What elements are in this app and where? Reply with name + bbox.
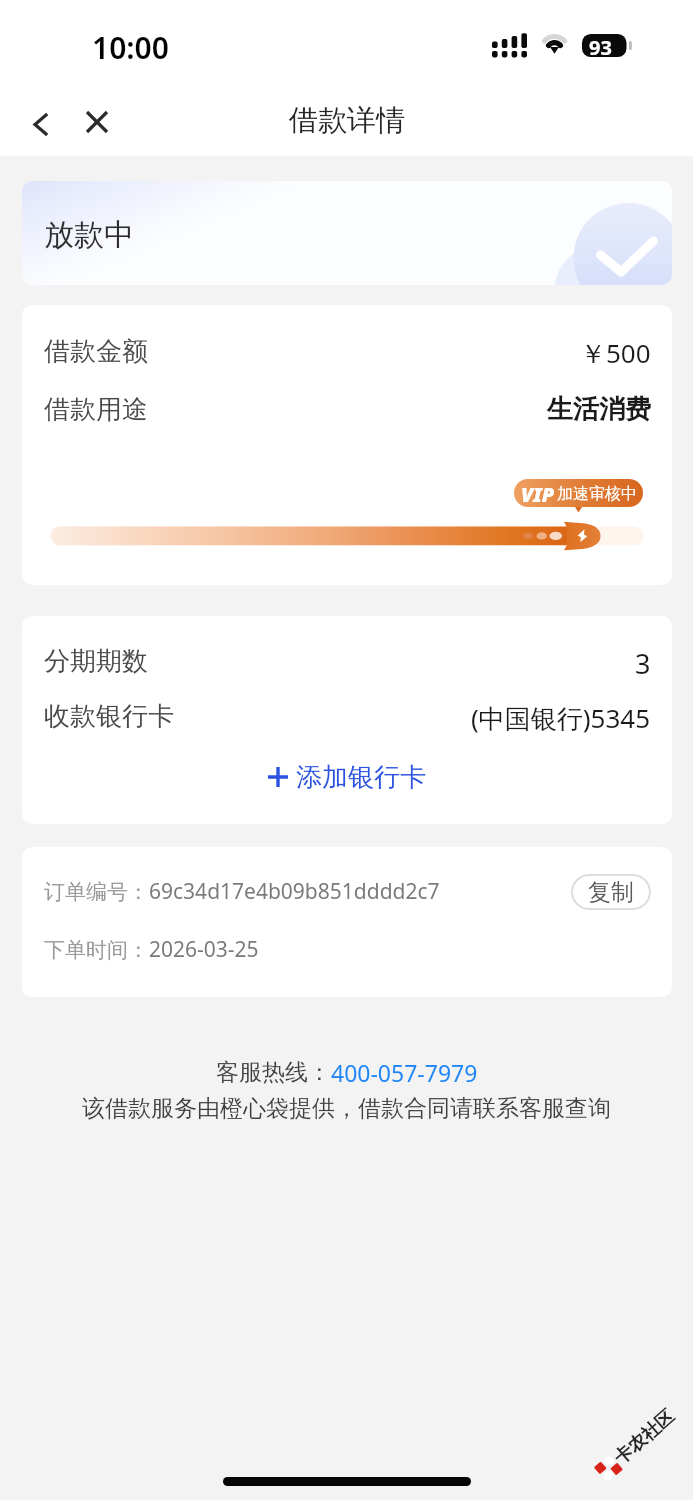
staticText: (中国银行)5345 (471, 700, 651, 736)
staticText: 添加银行卡 (296, 761, 426, 794)
staticText: 收款银行卡 (44, 700, 174, 733)
staticText: ￥500 (580, 335, 651, 371)
button[interactable]: Close (73, 98, 121, 146)
button[interactable]: 400-057-7979 (331, 1057, 478, 1088)
button[interactable]: 复制 (571, 874, 651, 910)
staticText: 借款详情 (289, 102, 405, 139)
staticText: 放款中 (44, 216, 134, 254)
staticText: 卡农社区 (610, 1405, 679, 1470)
button[interactable]: Back (16, 100, 64, 148)
staticText: 该借款服务由橙心袋提供，借款合同请联系客服查询 (82, 1094, 611, 1123)
staticText: 订单编号： (44, 879, 149, 905)
staticText: 10:00 (92, 27, 169, 68)
staticText: 加速审核中 (557, 484, 637, 504)
staticText: 下单时间： (44, 937, 149, 963)
staticText: 复制 (588, 878, 634, 907)
staticText: 93 (589, 34, 612, 57)
staticText: 3 (635, 645, 651, 682)
staticText: VIP (521, 481, 555, 507)
staticText: 借款用途 (44, 393, 148, 426)
staticText: 2026-03-25 (149, 935, 259, 964)
staticText: 生活消费 (547, 393, 651, 426)
button[interactable]: 添加银行卡 (268, 753, 426, 801)
staticText: 分期期数 (44, 645, 148, 678)
staticText: 借款金额 (44, 335, 148, 368)
staticText: 69c34d17e4b09b851dddd2c7 (149, 877, 440, 906)
staticText: 客服热线： (216, 1058, 331, 1087)
